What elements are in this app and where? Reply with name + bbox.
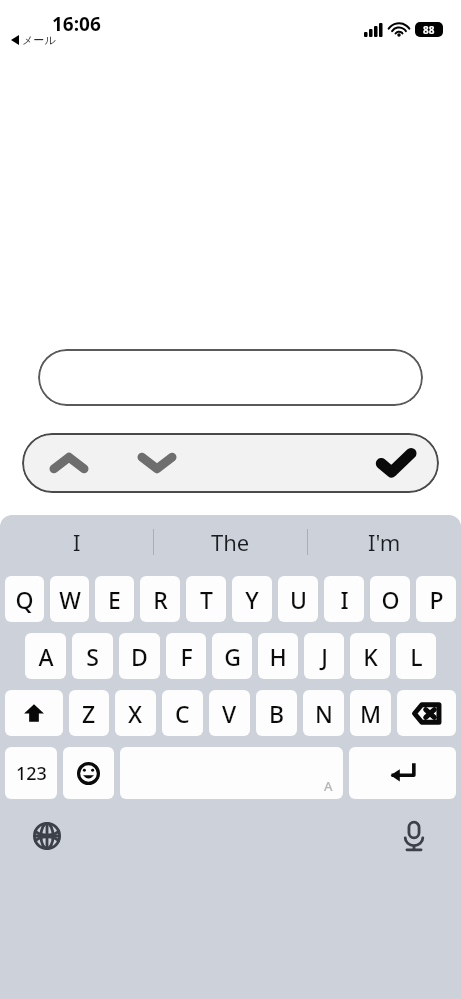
staticText: J bbox=[321, 641, 328, 672]
button[interactable]: Space bbox=[120, 747, 343, 799]
button[interactable]: Z bbox=[69, 690, 109, 736]
staticText: 123 bbox=[16, 761, 47, 786]
staticText: 16:06 bbox=[52, 11, 101, 37]
button[interactable]: H bbox=[258, 633, 298, 679]
staticText: H bbox=[269, 641, 287, 672]
button[interactable]: M bbox=[350, 690, 391, 736]
button[interactable]: Back to Mail bbox=[11, 33, 56, 47]
button[interactable]: C bbox=[162, 690, 203, 736]
staticText: C bbox=[175, 698, 190, 729]
staticText: O bbox=[381, 584, 400, 615]
button[interactable]: I'm bbox=[308, 515, 461, 568]
button[interactable]: V bbox=[209, 690, 250, 736]
staticText: I bbox=[340, 584, 349, 615]
staticText: W bbox=[59, 584, 81, 615]
button[interactable]: I bbox=[324, 576, 364, 622]
button[interactable]: E bbox=[95, 576, 134, 622]
button[interactable]: Done bbox=[371, 438, 421, 488]
button[interactable]: Next field bbox=[134, 440, 180, 486]
staticText: K bbox=[363, 641, 378, 672]
button[interactable]: Q bbox=[5, 576, 44, 622]
button[interactable]: P bbox=[416, 576, 456, 622]
staticText: X bbox=[128, 698, 143, 729]
button[interactable]: K bbox=[350, 633, 390, 679]
staticText: B bbox=[269, 698, 285, 729]
staticText: D bbox=[131, 641, 148, 672]
button[interactable]: The bbox=[154, 515, 307, 568]
staticText: Q bbox=[15, 584, 34, 615]
button[interactable]: W bbox=[50, 576, 89, 622]
button[interactable]: L bbox=[396, 633, 436, 679]
button[interactable]: Switch keyboard language bbox=[25, 814, 69, 858]
staticText: L bbox=[410, 641, 423, 672]
staticText: Z bbox=[82, 698, 96, 729]
button[interactable]: I bbox=[0, 515, 153, 568]
button[interactable]: T bbox=[186, 576, 226, 622]
staticText: The bbox=[211, 527, 250, 557]
button[interactable]: 123 bbox=[5, 747, 57, 799]
button[interactable]: J bbox=[304, 633, 344, 679]
staticText: A bbox=[38, 641, 54, 672]
staticText: A bbox=[324, 777, 333, 795]
staticText: N bbox=[315, 698, 333, 729]
button[interactable]: O bbox=[370, 576, 410, 622]
button[interactable]: X bbox=[115, 690, 156, 736]
button[interactable]: A bbox=[25, 633, 66, 679]
button[interactable]: D bbox=[119, 633, 160, 679]
staticText: F bbox=[180, 641, 193, 672]
button[interactable]: R bbox=[140, 576, 180, 622]
staticText: P bbox=[429, 584, 444, 615]
staticText: 88 bbox=[423, 23, 435, 37]
button[interactable]: S bbox=[72, 633, 113, 679]
staticText: Y bbox=[245, 584, 259, 615]
staticText: M bbox=[360, 698, 382, 729]
staticText: R bbox=[153, 584, 168, 615]
staticText: メール bbox=[22, 33, 56, 47]
button[interactable]: U bbox=[278, 576, 318, 622]
staticText: I'm bbox=[368, 527, 401, 557]
button[interactable]: Previous field bbox=[46, 440, 92, 486]
button[interactable]: G bbox=[212, 633, 252, 679]
button[interactable]: Y bbox=[232, 576, 272, 622]
staticText: G bbox=[224, 641, 241, 672]
staticText: I bbox=[73, 527, 81, 557]
button[interactable]: Shift bbox=[5, 690, 63, 736]
button[interactable]: Return bbox=[349, 747, 456, 799]
staticText: T bbox=[200, 584, 213, 615]
button[interactable]: F bbox=[166, 633, 206, 679]
staticText: E bbox=[108, 584, 121, 615]
button[interactable]: Emoji bbox=[63, 747, 114, 799]
button[interactable]: Backspace bbox=[397, 690, 456, 736]
staticText: S bbox=[86, 641, 99, 672]
button[interactable]: Text input field bbox=[38, 349, 423, 406]
button[interactable]: N bbox=[303, 690, 344, 736]
button[interactable]: Dictation bbox=[392, 814, 436, 858]
staticText: U bbox=[290, 584, 307, 615]
button[interactable]: B bbox=[256, 690, 297, 736]
staticText: V bbox=[222, 698, 237, 729]
